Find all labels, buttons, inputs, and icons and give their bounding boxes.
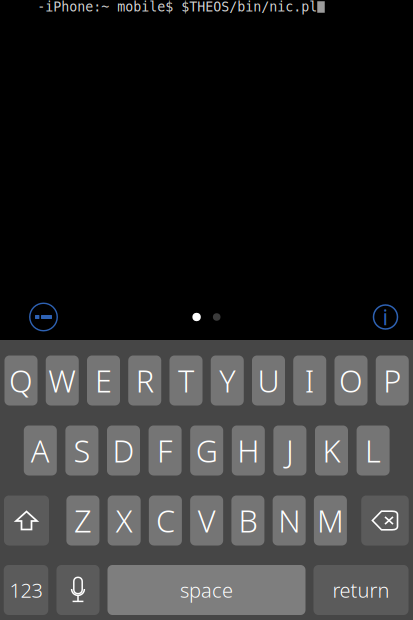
- staticText: D: [112, 430, 134, 471]
- staticText: N: [278, 500, 300, 541]
- staticText: B: [238, 500, 257, 541]
- staticText: R: [136, 360, 154, 401]
- staticText: i: [382, 303, 388, 331]
- staticText: A: [31, 430, 50, 471]
- button[interactable]: H: [232, 425, 265, 475]
- button[interactable]: O: [334, 355, 367, 405]
- staticText: return: [332, 577, 389, 603]
- button[interactable]: X: [108, 495, 141, 545]
- staticText: I: [305, 360, 315, 401]
- button[interactable]: Dictate: [56, 565, 99, 615]
- button[interactable]: Q: [4, 355, 37, 405]
- button[interactable]: D: [107, 425, 140, 475]
- button[interactable]: R: [128, 355, 161, 405]
- button[interactable]: U: [252, 355, 285, 405]
- staticText: J: [286, 430, 294, 471]
- staticText: F: [157, 430, 173, 471]
- button[interactable]: A: [24, 425, 57, 475]
- button[interactable]: Y: [211, 355, 244, 405]
- button[interactable]: I: [293, 355, 326, 405]
- button[interactable]: V: [190, 495, 223, 545]
- button[interactable]: Z: [66, 495, 99, 545]
- staticText: X: [116, 500, 133, 541]
- staticText: T: [178, 360, 194, 401]
- staticText: space: [180, 577, 233, 603]
- staticText: O: [339, 360, 363, 401]
- button[interactable]: S: [65, 425, 98, 475]
- staticText: L: [365, 430, 381, 471]
- staticText: P: [383, 360, 401, 401]
- button[interactable]: K: [315, 425, 348, 475]
- button[interactable]: C: [149, 495, 182, 545]
- staticText: Q: [9, 360, 33, 401]
- staticText: U: [257, 360, 279, 401]
- button[interactable]: Toggle keyboard: [29, 302, 58, 331]
- button[interactable]: space: [107, 565, 305, 615]
- staticText: V: [198, 500, 216, 541]
- button[interactable]: return: [313, 565, 408, 615]
- staticText: K: [322, 430, 340, 471]
- button[interactable]: N: [273, 495, 306, 545]
- button[interactable]: W: [46, 355, 79, 405]
- button[interactable]: F: [149, 425, 182, 475]
- staticText: Y: [219, 360, 235, 401]
- button[interactable]: T: [169, 355, 202, 405]
- staticText: E: [95, 360, 112, 401]
- staticText: Z: [74, 500, 92, 541]
- button[interactable]: Info: [372, 304, 398, 330]
- button[interactable]: B: [231, 495, 264, 545]
- staticText: G: [196, 430, 218, 471]
- staticText: W: [48, 360, 76, 401]
- button[interactable]: Delete: [361, 495, 409, 545]
- staticText: C: [156, 500, 175, 541]
- staticText: S: [73, 430, 90, 471]
- button[interactable]: Shift: [4, 495, 49, 545]
- button[interactable]: G: [190, 425, 223, 475]
- staticText: H: [237, 430, 259, 471]
- button[interactable]: M: [314, 495, 347, 545]
- button[interactable]: L: [357, 425, 390, 475]
- button[interactable]: P: [376, 355, 409, 405]
- staticText: M: [317, 500, 344, 541]
- staticText: -iPhone:~ mobile$ $THEOS/bin/nic.pl: [37, 0, 317, 14]
- staticText: 123: [9, 577, 42, 603]
- button[interactable]: E: [87, 355, 120, 405]
- button[interactable]: 123: [4, 565, 48, 615]
- button[interactable]: J: [273, 425, 306, 475]
